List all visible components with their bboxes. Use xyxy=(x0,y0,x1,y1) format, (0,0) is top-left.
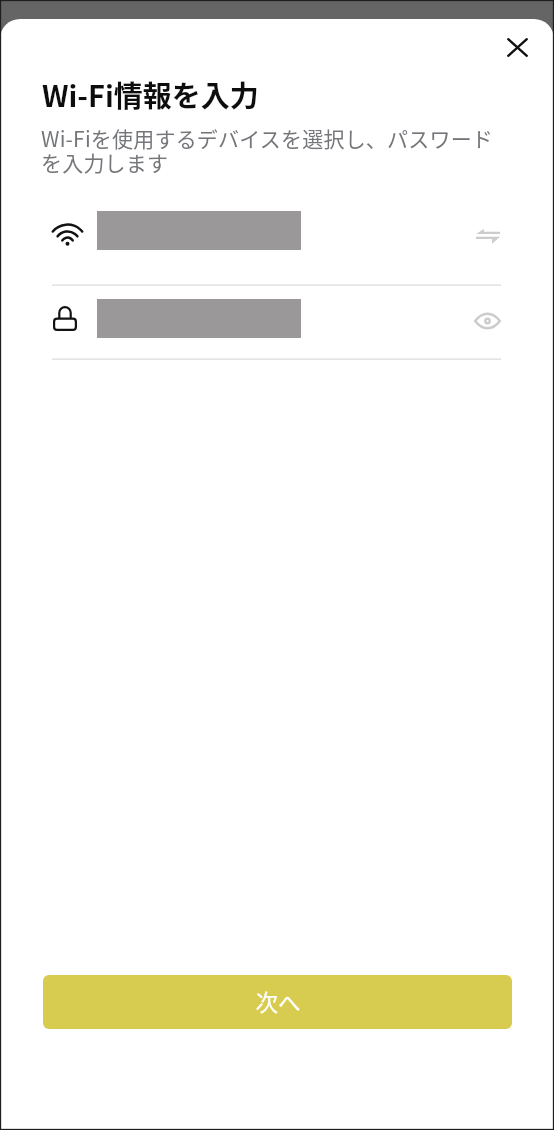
staticText: Wi-Fiを使用するデバイスを選択し、パスワードを入力します xyxy=(41,123,497,177)
button[interactable]: Close xyxy=(493,23,541,71)
button[interactable]: Choose network xyxy=(465,214,510,256)
button[interactable] xyxy=(0,199,554,265)
staticText: Wi-Fi情報を入力 xyxy=(42,73,259,115)
button[interactable] xyxy=(0,286,554,352)
button[interactable]: 次へ xyxy=(43,975,512,1029)
staticText: 次へ xyxy=(255,985,301,1018)
button[interactable]: Show password xyxy=(465,300,510,342)
